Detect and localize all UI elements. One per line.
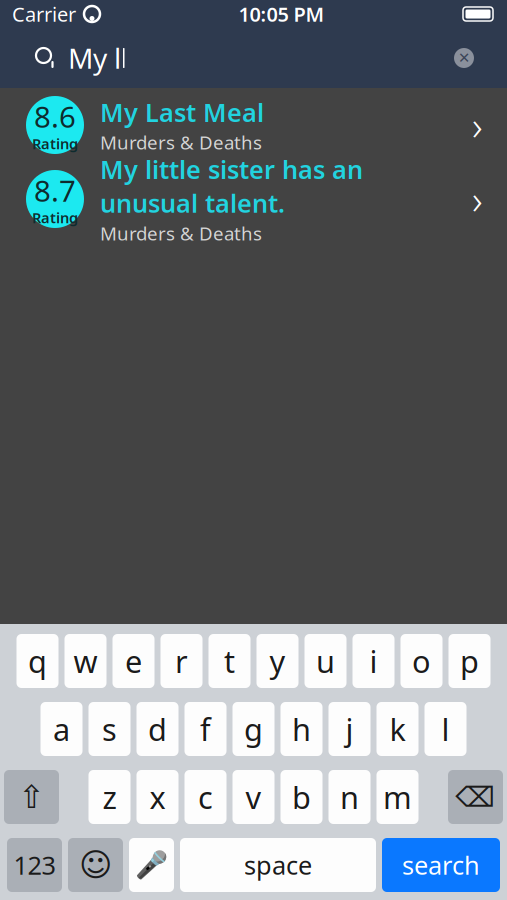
staticText: z xyxy=(102,777,116,817)
button[interactable]: u xyxy=(304,634,346,688)
button[interactable]: Dictation xyxy=(129,838,174,892)
staticText: d xyxy=(148,709,167,749)
staticText: My Last Meal xyxy=(100,95,264,129)
staticText: ☺ xyxy=(79,847,112,883)
button[interactable]: a xyxy=(40,702,82,756)
staticText: My l xyxy=(68,39,121,77)
button[interactable]: q xyxy=(16,634,58,688)
staticText: 8.7 xyxy=(34,171,76,210)
button[interactable]: l xyxy=(424,702,466,756)
staticText: ⇧ xyxy=(18,779,45,815)
staticText: Rating xyxy=(32,134,78,153)
staticText: 8.6 xyxy=(34,97,76,136)
staticText: 123 xyxy=(13,848,55,882)
button[interactable]: y xyxy=(256,634,298,688)
button[interactable]: Delete xyxy=(448,770,503,824)
staticText: m xyxy=(383,777,412,817)
staticText: 🎤 xyxy=(135,850,168,880)
button[interactable]: d xyxy=(136,702,178,756)
button[interactable]: Numbers and symbols xyxy=(7,838,62,892)
staticText: x xyxy=(149,777,165,817)
staticText: 10:05 PM xyxy=(238,1,324,27)
button[interactable]: f xyxy=(184,702,226,756)
staticText: a xyxy=(53,709,70,749)
button[interactable]: 8.6 xyxy=(0,88,507,162)
button[interactable]: c xyxy=(184,770,226,824)
staticText: e xyxy=(125,641,142,681)
button[interactable]: Emoji xyxy=(68,838,123,892)
button[interactable]: 8.7 xyxy=(0,162,507,236)
staticText: w xyxy=(73,641,97,681)
staticText: q xyxy=(28,641,47,681)
button[interactable]: Shift xyxy=(4,770,59,824)
button[interactable]: b xyxy=(280,770,322,824)
staticText: › xyxy=(472,172,483,225)
button[interactable]: space xyxy=(180,838,376,892)
staticText: y xyxy=(269,641,285,681)
button[interactable]: v xyxy=(232,770,274,824)
staticText: b xyxy=(292,777,311,817)
staticText: ✕ xyxy=(458,50,470,66)
staticText: j xyxy=(345,709,353,749)
staticText: › xyxy=(472,98,483,151)
button[interactable]: m xyxy=(376,770,418,824)
staticText: k xyxy=(389,709,405,749)
staticText: s xyxy=(102,709,117,749)
button[interactable]: n xyxy=(328,770,370,824)
staticText: Murders & Deaths xyxy=(100,221,262,245)
button[interactable]: s xyxy=(88,702,130,756)
staticText: Rating xyxy=(32,208,78,227)
button[interactable]: k xyxy=(376,702,418,756)
button[interactable]: r xyxy=(160,634,202,688)
button[interactable]: o xyxy=(400,634,442,688)
button[interactable]: i xyxy=(352,634,394,688)
staticText: t xyxy=(224,641,235,681)
button[interactable]: j xyxy=(328,702,370,756)
button[interactable]: g xyxy=(232,702,274,756)
staticText: r xyxy=(175,641,188,681)
staticText: v xyxy=(245,777,261,817)
staticText: i xyxy=(369,641,377,681)
staticText: l xyxy=(441,709,449,749)
staticText: g xyxy=(244,709,263,749)
staticText: Carrier xyxy=(12,1,76,27)
staticText: f xyxy=(200,709,211,749)
staticText: space xyxy=(244,848,312,882)
staticText: search xyxy=(402,848,480,882)
button[interactable]: Clear search text xyxy=(447,41,481,75)
staticText: p xyxy=(460,641,479,681)
button[interactable]: p xyxy=(448,634,490,688)
button[interactable]: w xyxy=(64,634,106,688)
staticText: u xyxy=(316,641,335,681)
button[interactable]: z xyxy=(88,770,130,824)
staticText: Murders & Deaths xyxy=(100,130,262,155)
staticText: c xyxy=(198,777,213,817)
staticText: My little sister has an unusual talent. xyxy=(100,152,363,220)
button[interactable]: e xyxy=(112,634,154,688)
button[interactable]: search xyxy=(382,838,500,892)
button[interactable]: x xyxy=(136,770,178,824)
button[interactable]: t xyxy=(208,634,250,688)
staticText: ⌫ xyxy=(455,781,495,813)
button[interactable]: h xyxy=(280,702,322,756)
staticText: o xyxy=(412,641,431,681)
staticText: h xyxy=(292,709,311,749)
staticText: n xyxy=(340,777,359,817)
